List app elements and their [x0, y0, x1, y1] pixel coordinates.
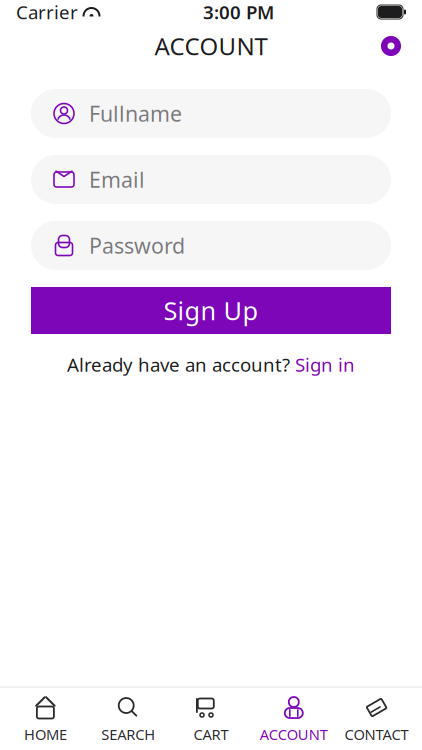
staticText: Email — [89, 165, 145, 194]
button[interactable]: Password — [31, 221, 391, 270]
staticText: CONTACT — [345, 724, 409, 744]
staticText: HOME — [24, 724, 67, 744]
button[interactable]: HOME — [4, 687, 87, 750]
button[interactable]: Settings — [372, 27, 410, 65]
button[interactable]: CONTACT — [335, 687, 418, 750]
staticText: 3:00 PM — [203, 0, 274, 24]
staticText: ACCOUNT — [260, 724, 328, 744]
staticText: CART — [193, 724, 228, 744]
staticText: Carrier — [16, 0, 78, 24]
button[interactable]: CART — [170, 687, 252, 750]
staticText: Sign Up — [163, 294, 258, 327]
button[interactable]: Already have an account? — [67, 348, 355, 381]
staticText: Fullname — [89, 99, 182, 128]
button[interactable]: SEARCH — [87, 687, 170, 750]
button[interactable]: Email — [31, 155, 391, 204]
staticText: Already have an account? — [67, 352, 290, 377]
staticText: Sign in — [295, 352, 355, 377]
button[interactable]: Sign Up — [31, 287, 391, 334]
button[interactable]: ACCOUNT — [252, 687, 335, 750]
button[interactable]: Fullname — [31, 89, 391, 138]
staticText: Password — [89, 231, 185, 260]
staticText: SEARCH — [101, 724, 155, 744]
staticText: ACCOUNT — [154, 30, 267, 62]
